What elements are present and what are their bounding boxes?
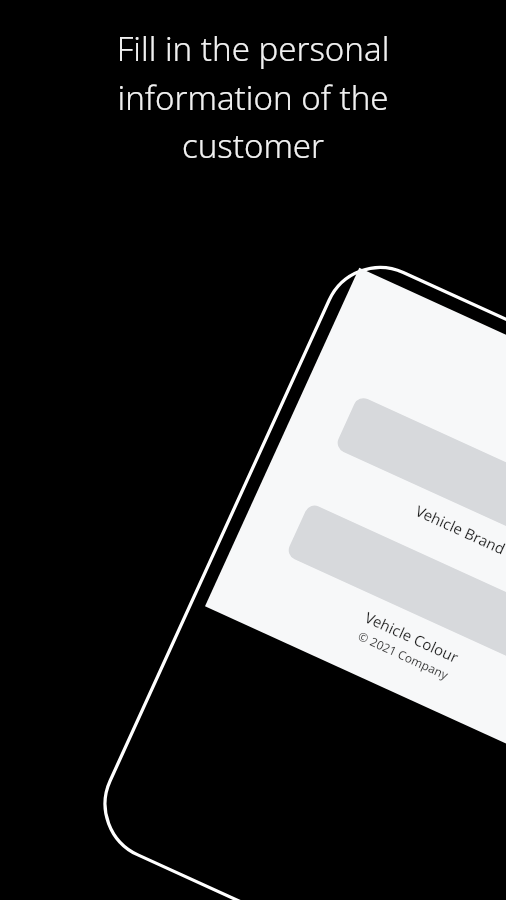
other: Phone preview of customer information fo… xyxy=(0,0,506,900)
staticText: Fill in the personal information of the … xyxy=(52,26,454,167)
